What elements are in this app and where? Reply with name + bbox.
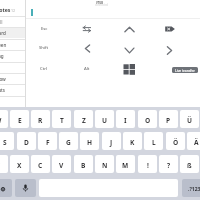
button[interactable]: Ctrl xyxy=(35,64,53,74)
button[interactable]: M xyxy=(116,155,135,173)
staticText: .?123 xyxy=(188,186,200,193)
staticText: L xyxy=(152,138,156,147)
staticText: Live transfer xyxy=(175,68,195,73)
button[interactable]: Z xyxy=(74,110,93,128)
button[interactable]: V xyxy=(52,155,71,173)
staticText: X xyxy=(17,161,22,170)
button[interactable]: Left xyxy=(80,41,95,56)
staticText: Alt xyxy=(84,66,90,72)
button[interactable]: ß xyxy=(180,155,199,173)
button[interactable]: H xyxy=(80,132,99,150)
button[interactable]: Keyboard xyxy=(0,27,25,38)
button[interactable]: Delete xyxy=(162,23,178,35)
button[interactable]: Setting xyxy=(0,50,25,61)
button[interactable]: S xyxy=(0,132,14,150)
button[interactable]: Windows xyxy=(122,62,138,77)
staticText: Ü xyxy=(187,116,192,125)
button[interactable]: L xyxy=(144,132,163,150)
button[interactable]: ! xyxy=(138,155,157,173)
button[interactable]: Esc xyxy=(35,24,53,34)
button[interactable]: K xyxy=(123,132,142,150)
button[interactable]: E xyxy=(10,110,29,128)
button[interactable]: Ö xyxy=(166,132,185,150)
staticText: J xyxy=(110,138,113,147)
staticText: U xyxy=(102,116,107,125)
staticText: Shift xyxy=(39,45,49,51)
button[interactable]: W xyxy=(0,110,8,128)
staticText: W xyxy=(0,116,2,125)
staticText: Z xyxy=(82,116,86,125)
staticText: E xyxy=(18,116,22,125)
button[interactable]: Fullscreen xyxy=(0,39,25,50)
staticText: K xyxy=(130,138,135,147)
button[interactable]: Tab xyxy=(79,23,95,35)
staticText: G xyxy=(66,138,71,147)
button[interactable]: O xyxy=(138,110,157,128)
staticText: VTUB xyxy=(96,1,103,5)
button[interactable]: Ü xyxy=(180,110,199,128)
button[interactable]: Shortcuts xyxy=(0,84,25,95)
button[interactable]: F xyxy=(38,132,57,150)
staticText: Ä xyxy=(194,138,199,147)
button[interactable]: Down xyxy=(121,43,138,58)
button[interactable] xyxy=(0,179,12,197)
button[interactable]: B xyxy=(74,155,93,173)
staticText: Notes xyxy=(0,6,11,13)
staticText: Keyboard xyxy=(0,30,6,36)
staticText: T xyxy=(60,116,64,125)
button[interactable]: T xyxy=(52,110,71,128)
staticText: Esc xyxy=(41,26,48,32)
button[interactable]: Show xyxy=(0,73,25,84)
button[interactable]: Alt xyxy=(78,64,96,74)
button[interactable]: Y xyxy=(0,155,8,173)
staticText: ? xyxy=(167,161,171,170)
staticText: ß xyxy=(187,161,192,170)
staticText: S xyxy=(3,138,7,147)
staticText: N xyxy=(102,161,108,170)
button[interactable]: .?123 xyxy=(182,179,200,197)
staticText: 12 xyxy=(11,8,16,13)
staticText: O xyxy=(145,116,151,125)
button[interactable]: N xyxy=(95,155,114,173)
button[interactable]: U xyxy=(95,110,114,128)
staticText: H xyxy=(87,138,93,147)
staticText: connected xyxy=(95,3,109,7)
staticText: Ctrl xyxy=(40,66,48,72)
button[interactable]: R xyxy=(31,110,50,128)
staticText: ! xyxy=(147,161,149,170)
button[interactable]: C xyxy=(31,155,50,173)
button[interactable]: D xyxy=(17,132,36,150)
button[interactable]: Ä xyxy=(187,132,200,150)
staticText: P xyxy=(166,116,171,125)
button[interactable] xyxy=(0,62,25,73)
button[interactable]: Live transfer xyxy=(172,67,198,73)
button[interactable]: G xyxy=(59,132,78,150)
button[interactable]: X xyxy=(10,155,29,173)
staticText: Shortcuts xyxy=(0,87,6,93)
staticText: All xyxy=(0,19,3,25)
button[interactable] xyxy=(15,179,36,197)
button[interactable]: Up xyxy=(121,22,138,37)
button[interactable]: I xyxy=(116,110,135,128)
staticText: C xyxy=(38,161,43,170)
staticText: B xyxy=(81,161,86,170)
staticText: I xyxy=(124,116,127,125)
button[interactable]: Right xyxy=(162,43,177,58)
staticText: Show xyxy=(0,76,6,82)
staticText: F xyxy=(46,138,50,147)
staticText: R xyxy=(38,116,43,125)
button[interactable]: ? xyxy=(159,155,178,173)
staticText: Ö xyxy=(173,138,179,147)
staticText: Setting xyxy=(0,53,4,59)
staticText: Fullscreen xyxy=(0,42,7,48)
staticText: V xyxy=(59,161,64,170)
button[interactable]: P xyxy=(159,110,178,128)
button[interactable]: All xyxy=(0,16,25,27)
button[interactable]: J xyxy=(102,132,121,150)
button[interactable]: Shift xyxy=(35,43,53,53)
staticText: D xyxy=(24,138,29,147)
staticText: M xyxy=(122,161,129,170)
